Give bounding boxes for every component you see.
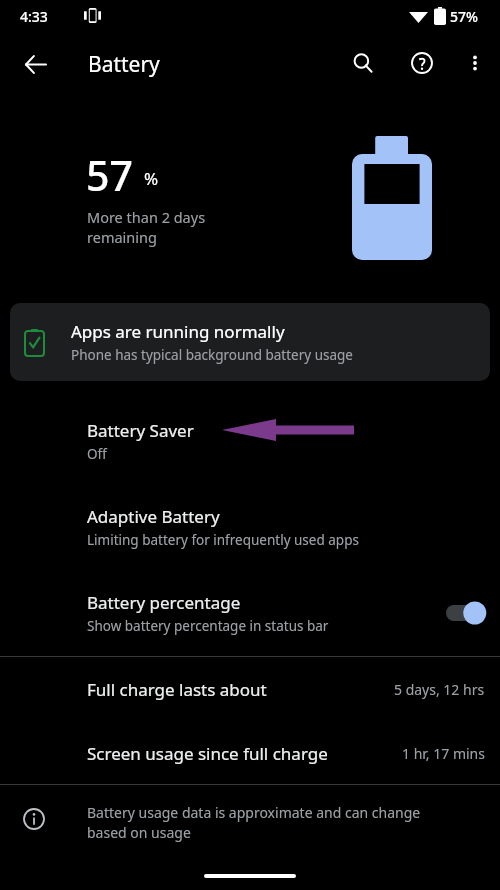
button[interactable]: Help: [402, 43, 442, 83]
button[interactable]: Full charge lasts about: [0, 657, 500, 721]
staticText: Battery usage data is approximate and ca…: [87, 803, 421, 843]
staticText: Battery: [88, 50, 160, 79]
staticText: Full charge lasts about: [87, 678, 496, 701]
staticText: Limiting battery for infrequently used a…: [87, 531, 359, 549]
staticText: 57: [86, 147, 133, 203]
button[interactable]: Back: [14, 43, 56, 85]
staticText: 57%: [450, 7, 478, 26]
staticText: 4:33: [20, 7, 48, 26]
staticText: Battery Saver: [87, 419, 194, 442]
staticText: Show battery percentage in status bar: [87, 617, 329, 635]
button[interactable]: Apps are running normally: [10, 303, 490, 381]
button[interactable]: Search: [343, 43, 383, 83]
staticText: Screen usage since full charge: [87, 742, 500, 765]
staticText: Battery percentage: [87, 591, 241, 614]
button[interactable]: Screen usage since full charge: [0, 721, 500, 785]
button[interactable]: More options: [455, 43, 495, 83]
staticText: Adaptive Battery: [87, 505, 220, 528]
staticText: Phone has typical background battery usa…: [71, 346, 353, 364]
staticText: More than 2 days remaining: [87, 207, 206, 248]
staticText: Off: [87, 445, 107, 463]
button[interactable]: Adaptive Battery: [0, 489, 500, 555]
staticText: 5 days, 12 hrs: [394, 680, 485, 699]
staticText: Apps are running normally: [71, 320, 285, 343]
button[interactable]: Battery percentage: [0, 578, 500, 648]
staticText: 1 hr, 17 mins: [402, 744, 485, 763]
button[interactable]: Battery Saver: [0, 403, 500, 469]
staticText: %: [144, 167, 159, 190]
